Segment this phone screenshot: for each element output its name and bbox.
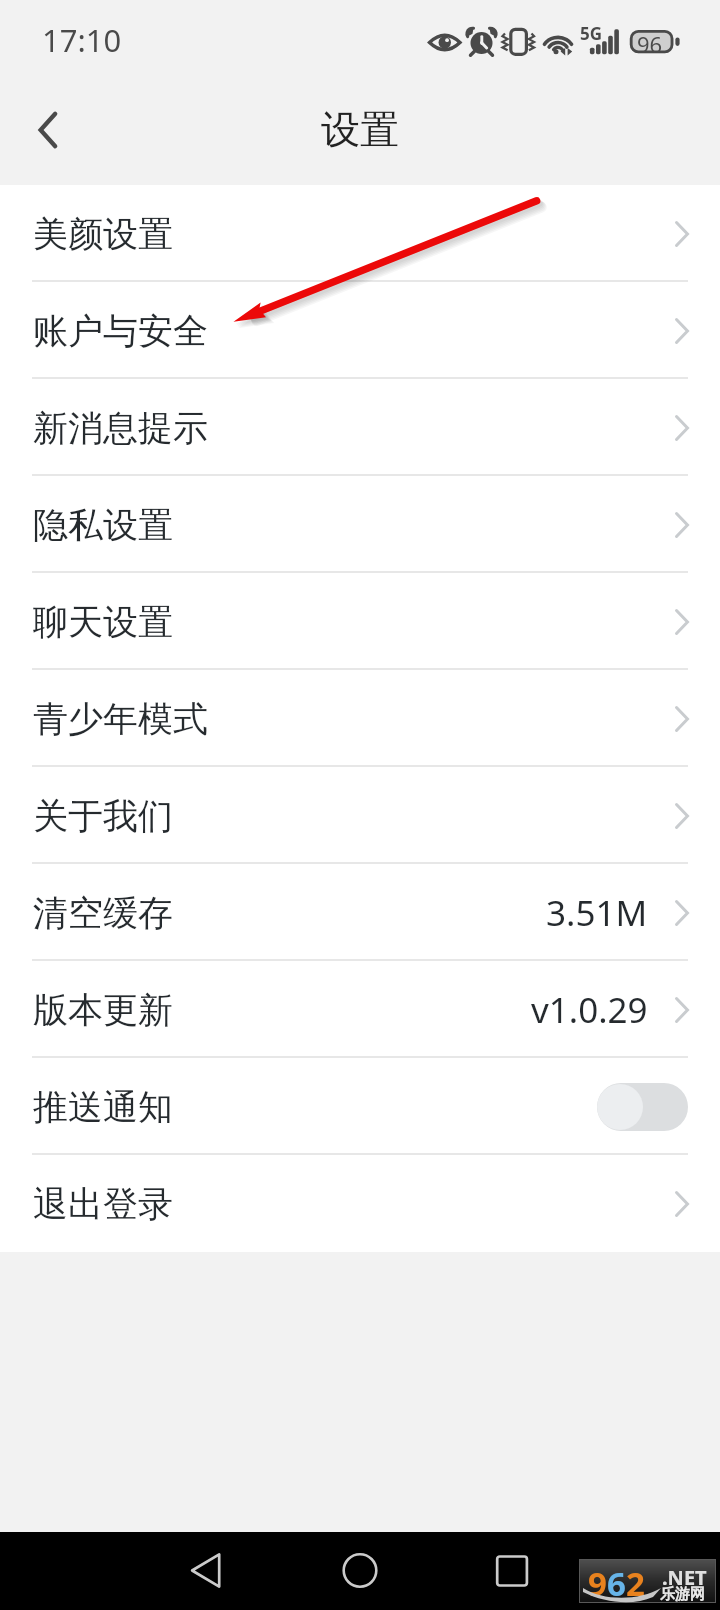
staticText: 96 [637, 29, 663, 59]
button[interactable]: 账户与安全 [0, 282, 720, 379]
staticText: 9 [588, 1561, 607, 1601]
staticText: 退出登录 [33, 1182, 173, 1226]
staticText: 清空缓存 [33, 891, 173, 935]
button[interactable]: 关于我们 [0, 767, 720, 864]
staticText: 版本更新 [33, 988, 173, 1032]
staticText: 设置 [321, 105, 399, 154]
staticText: .NET [662, 1564, 707, 1591]
staticText: 青少年模式 [33, 697, 208, 741]
button[interactable]: 隐私设置 [0, 476, 720, 573]
button[interactable]: 退出登录 [0, 1155, 720, 1252]
button[interactable]: Back [0, 82, 96, 178]
staticText: 2 [626, 1561, 645, 1601]
staticText: 聊天设置 [33, 600, 173, 644]
staticText: 推送通知 [33, 1085, 173, 1129]
button[interactable]: Back [170, 1532, 242, 1610]
button[interactable]: Recent apps [476, 1532, 548, 1610]
button[interactable]: 聊天设置 [0, 573, 720, 670]
button[interactable]: 推送通知开关 [597, 1083, 688, 1131]
button[interactable]: 版本更新 [0, 961, 720, 1058]
staticText: v1.0.29 [531, 986, 648, 1034]
staticText: 3.51M [546, 889, 648, 937]
staticText: 新消息提示 [33, 406, 208, 450]
staticText: 5G [580, 22, 603, 45]
button[interactable]: 青少年模式 [0, 670, 720, 767]
staticText: 隐私设置 [33, 503, 173, 547]
staticText: 美颜设置 [33, 212, 173, 256]
staticText: 账户与安全 [33, 309, 208, 353]
button[interactable]: Home [324, 1532, 396, 1610]
button[interactable]: 推送通知 [0, 1058, 720, 1155]
staticText: 6 [607, 1561, 626, 1601]
staticText: 乐游网 [660, 1585, 705, 1604]
staticText: 17:10 [42, 19, 122, 61]
button[interactable]: 新消息提示 [0, 379, 720, 476]
button[interactable]: 清空缓存 [0, 864, 720, 961]
button[interactable]: 美颜设置 [0, 185, 720, 282]
staticText: 关于我们 [33, 794, 173, 838]
